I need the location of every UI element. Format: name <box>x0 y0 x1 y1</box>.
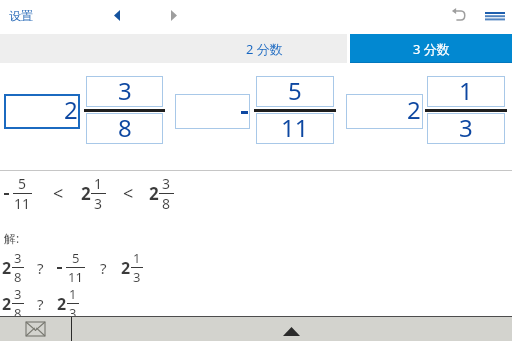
staticText: 1 <box>69 285 77 303</box>
staticText: 3 分数 <box>413 40 450 58</box>
button[interactable]: 5 <box>256 76 334 107</box>
button[interactable]: 3 <box>86 76 163 107</box>
staticText: 1 <box>94 174 103 193</box>
button[interactable]: 1 <box>427 76 505 107</box>
staticText: 3 <box>94 194 103 213</box>
staticText: 2 <box>81 182 91 205</box>
staticText: < <box>53 181 64 206</box>
button[interactable]: 3 分数 <box>350 34 512 63</box>
button[interactable]: 设置 <box>9 8 33 23</box>
button[interactable]: 3 <box>427 113 505 144</box>
button[interactable]: Previous <box>108 5 125 25</box>
staticText: 1 <box>133 249 141 267</box>
staticText: 5 <box>72 249 80 267</box>
staticText: 2 <box>121 257 131 279</box>
staticText: 3 <box>69 304 77 322</box>
button[interactable]: 2 <box>4 94 80 129</box>
staticText: 8 <box>14 304 22 322</box>
button[interactable] <box>175 94 250 129</box>
button[interactable]: Mail <box>26 322 45 336</box>
staticText: 2 <box>2 257 12 279</box>
staticText: 2 <box>2 293 12 315</box>
button[interactable]: 2 <box>346 94 423 129</box>
staticText: 8 <box>14 268 22 286</box>
staticText: 11 <box>281 111 309 142</box>
staticText: 解: <box>4 230 20 246</box>
staticText: 2 <box>64 93 78 126</box>
staticText: 5 <box>18 174 27 193</box>
staticText: 2 <box>149 182 159 205</box>
staticText: 2 <box>57 293 67 315</box>
staticText: 8 <box>118 111 132 142</box>
staticText: 3 <box>133 268 141 286</box>
staticText: < <box>123 181 134 206</box>
staticText: 3 <box>162 174 171 193</box>
staticText: ? <box>37 294 44 314</box>
button[interactable]: Next <box>165 5 182 25</box>
staticText: 11 <box>14 194 31 213</box>
button[interactable]: Undo <box>447 3 469 25</box>
staticText: 1 <box>459 74 473 105</box>
staticText: 3 <box>118 74 132 105</box>
staticText: 2 <box>407 93 421 126</box>
staticText: 设置 <box>9 8 33 23</box>
staticText: 11 <box>68 268 83 286</box>
button[interactable]: 2 分数 <box>184 34 345 63</box>
staticText: 2 分数 <box>246 40 283 58</box>
staticText: 8 <box>162 194 171 213</box>
staticText: 3 <box>14 285 22 303</box>
staticText: 3 <box>14 249 22 267</box>
staticText: ? <box>100 258 107 278</box>
button[interactable]: 11 <box>256 113 334 144</box>
button[interactable]: Expand keyboard <box>279 319 303 341</box>
staticText: 3 <box>459 111 473 142</box>
staticText: ? <box>37 258 44 278</box>
button[interactable]: 8 <box>86 113 163 144</box>
button[interactable]: Menu <box>482 3 508 29</box>
staticText: 5 <box>288 74 302 105</box>
